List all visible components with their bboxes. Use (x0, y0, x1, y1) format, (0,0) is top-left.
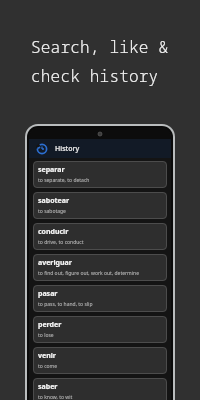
staticText: to know, to wit (38, 394, 73, 400)
button[interactable]: perder (33, 316, 167, 343)
staticText: pasar (38, 289, 58, 299)
staticText: check history (31, 65, 159, 87)
staticText: separar (38, 165, 65, 175)
staticText: venir (38, 351, 56, 361)
staticText: to find out, figure out, work out, deter… (38, 270, 139, 277)
staticText: History (55, 144, 80, 154)
staticText: averiguar (38, 258, 72, 268)
button[interactable]: venir (33, 347, 167, 374)
staticText: perder (38, 320, 62, 330)
button[interactable]: conducir (33, 223, 167, 250)
other: History (37, 144, 47, 154)
staticText: to lose (38, 332, 54, 339)
staticText: to come (38, 363, 58, 370)
staticText: to sabotage (38, 208, 66, 215)
staticText: to drive, to conduct (38, 239, 84, 246)
staticText: conducir (38, 227, 69, 237)
button[interactable]: sabotear (33, 192, 167, 219)
button[interactable]: averiguar (33, 254, 167, 281)
staticText: Search, like & (31, 36, 169, 58)
button[interactable]: separar (33, 161, 167, 188)
button[interactable]: saber (33, 378, 167, 400)
staticText: sabotear (38, 196, 70, 206)
staticText: saber (38, 382, 58, 392)
staticText: to separate, to detach (38, 177, 90, 184)
button[interactable]: History (29, 139, 171, 158)
staticText: to pass, to hand, to slip (38, 301, 93, 308)
button[interactable]: pasar (33, 285, 167, 312)
